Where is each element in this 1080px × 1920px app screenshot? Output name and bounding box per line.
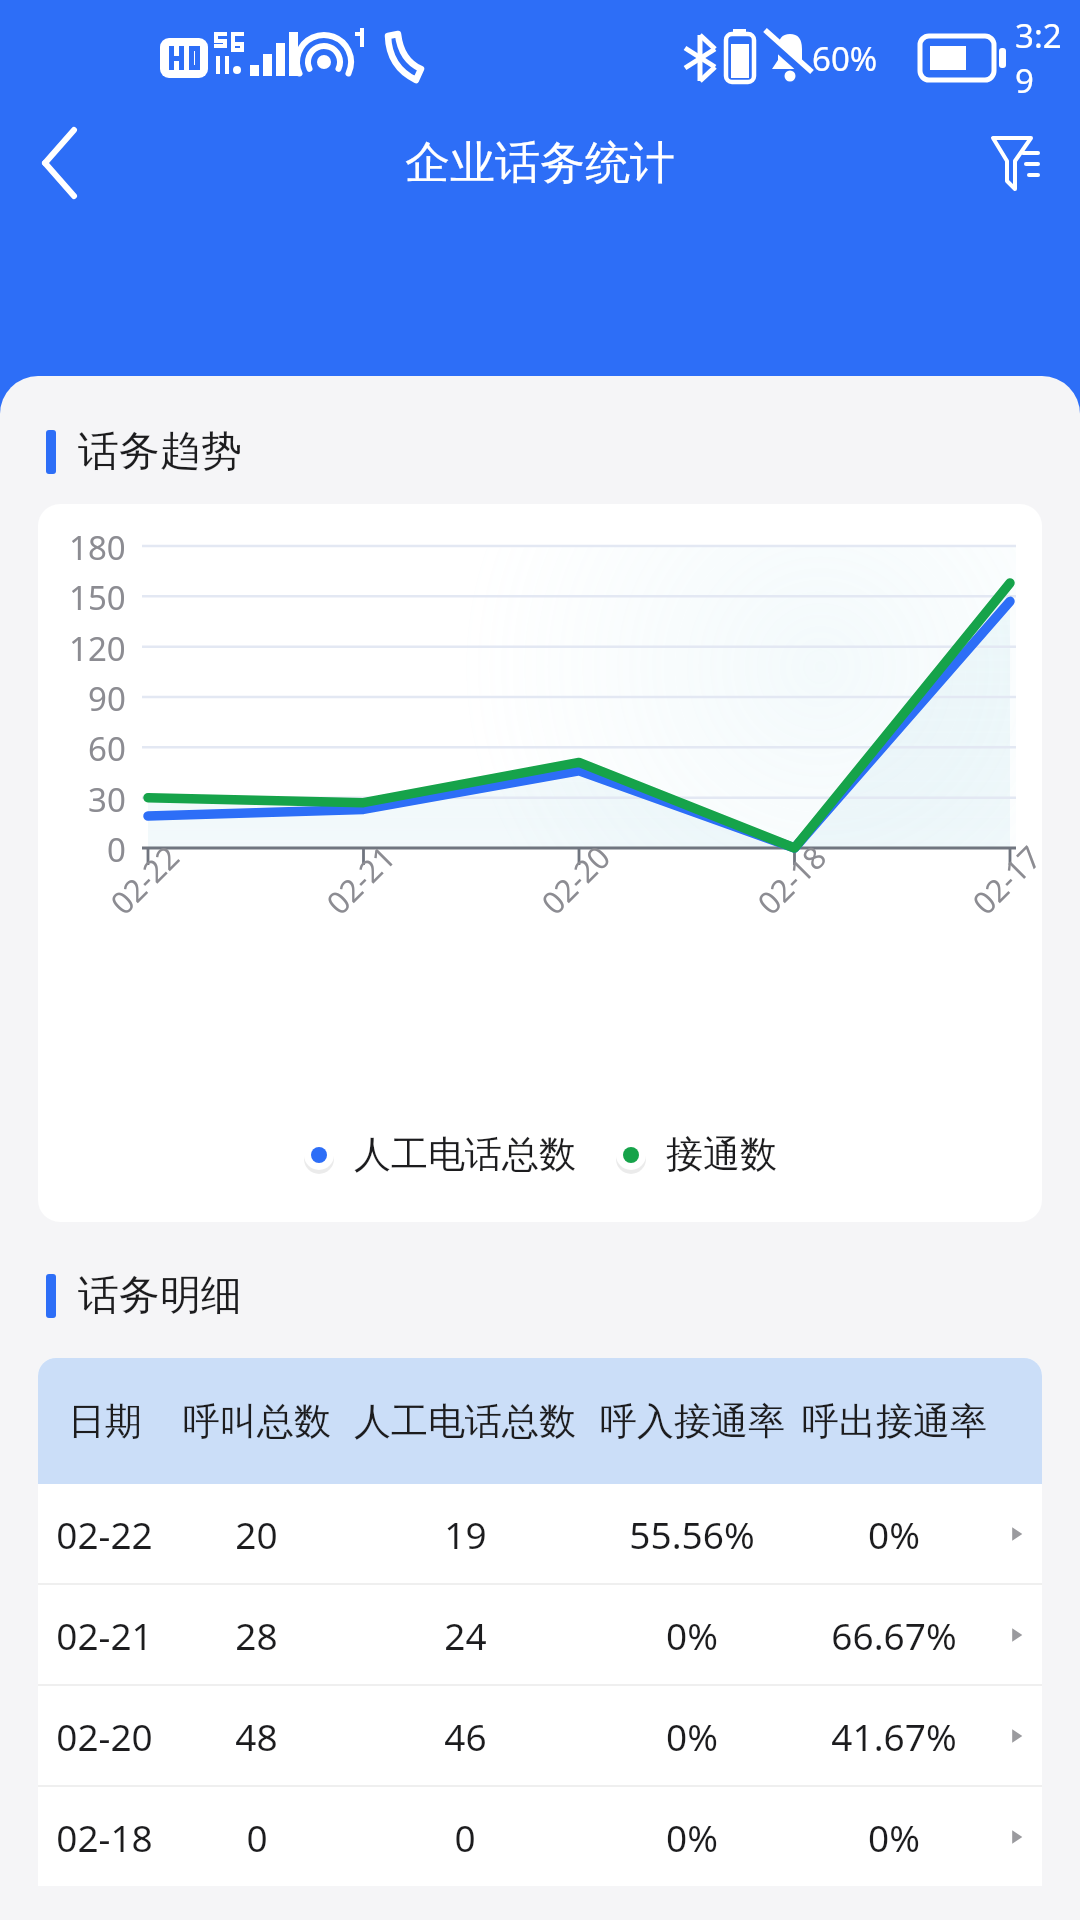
button[interactable]: Filter (978, 124, 1056, 202)
button[interactable]: 02-21 (38, 1585, 1042, 1684)
staticText: 日期 (68, 1398, 142, 1445)
staticText: 人工电话总数 (354, 1131, 576, 1178)
staticText: 0 (246, 1812, 268, 1862)
staticText: 0 (454, 1812, 476, 1862)
staticText: 02-22 (56, 1509, 153, 1559)
staticText: 0% (666, 1610, 718, 1660)
staticText: 话务明细 (78, 1270, 242, 1322)
staticText: 66.67% (831, 1610, 957, 1660)
staticText: 企业话务统计 (405, 135, 675, 192)
staticText: 0% (666, 1812, 718, 1862)
staticText: 55.56% (629, 1509, 755, 1559)
button[interactable]: Back (16, 120, 102, 206)
staticText: 02-18 (748, 836, 835, 923)
staticText: 呼叫总数 (183, 1398, 331, 1445)
staticText: 人工电话总数 (354, 1398, 576, 1445)
staticText: 48 (235, 1711, 278, 1761)
staticText: 02-21 (317, 836, 404, 923)
button[interactable]: 02-22 (38, 1484, 1042, 1583)
staticText: 0% (868, 1812, 920, 1862)
staticText: 0 (107, 827, 126, 872)
staticText: 02-17 (963, 836, 1042, 923)
button[interactable]: 02-18 (38, 1787, 1042, 1886)
staticText: 呼入接通率 (600, 1398, 785, 1445)
staticText: 0% (868, 1509, 920, 1559)
staticText: 28 (235, 1610, 278, 1660)
staticText: 30 (88, 777, 126, 822)
staticText: 3:29 (1015, 13, 1080, 103)
staticText: 19 (444, 1509, 487, 1559)
staticText: 20 (235, 1509, 278, 1559)
staticText: 02-20 (532, 836, 619, 923)
staticText: 41.67% (831, 1711, 957, 1761)
staticText: 180 (69, 525, 126, 570)
staticText: 02-18 (56, 1812, 153, 1862)
staticText: 90 (88, 676, 126, 721)
staticText: 话务趋势 (78, 426, 242, 478)
staticText: 02-21 (56, 1610, 153, 1660)
staticText: 150 (69, 575, 126, 620)
staticText: 02-20 (56, 1711, 153, 1761)
staticText: 120 (69, 626, 126, 671)
staticText: 0% (666, 1711, 718, 1761)
staticText: 呼出接通率 (802, 1398, 987, 1445)
button[interactable]: 02-20 (38, 1686, 1042, 1785)
staticText: 60 (88, 726, 126, 771)
staticText: 46 (444, 1711, 487, 1761)
staticText: 60% (812, 36, 878, 81)
staticText: 24 (444, 1610, 487, 1660)
staticText: 接通数 (666, 1131, 777, 1178)
staticText: 02-22 (101, 836, 188, 923)
